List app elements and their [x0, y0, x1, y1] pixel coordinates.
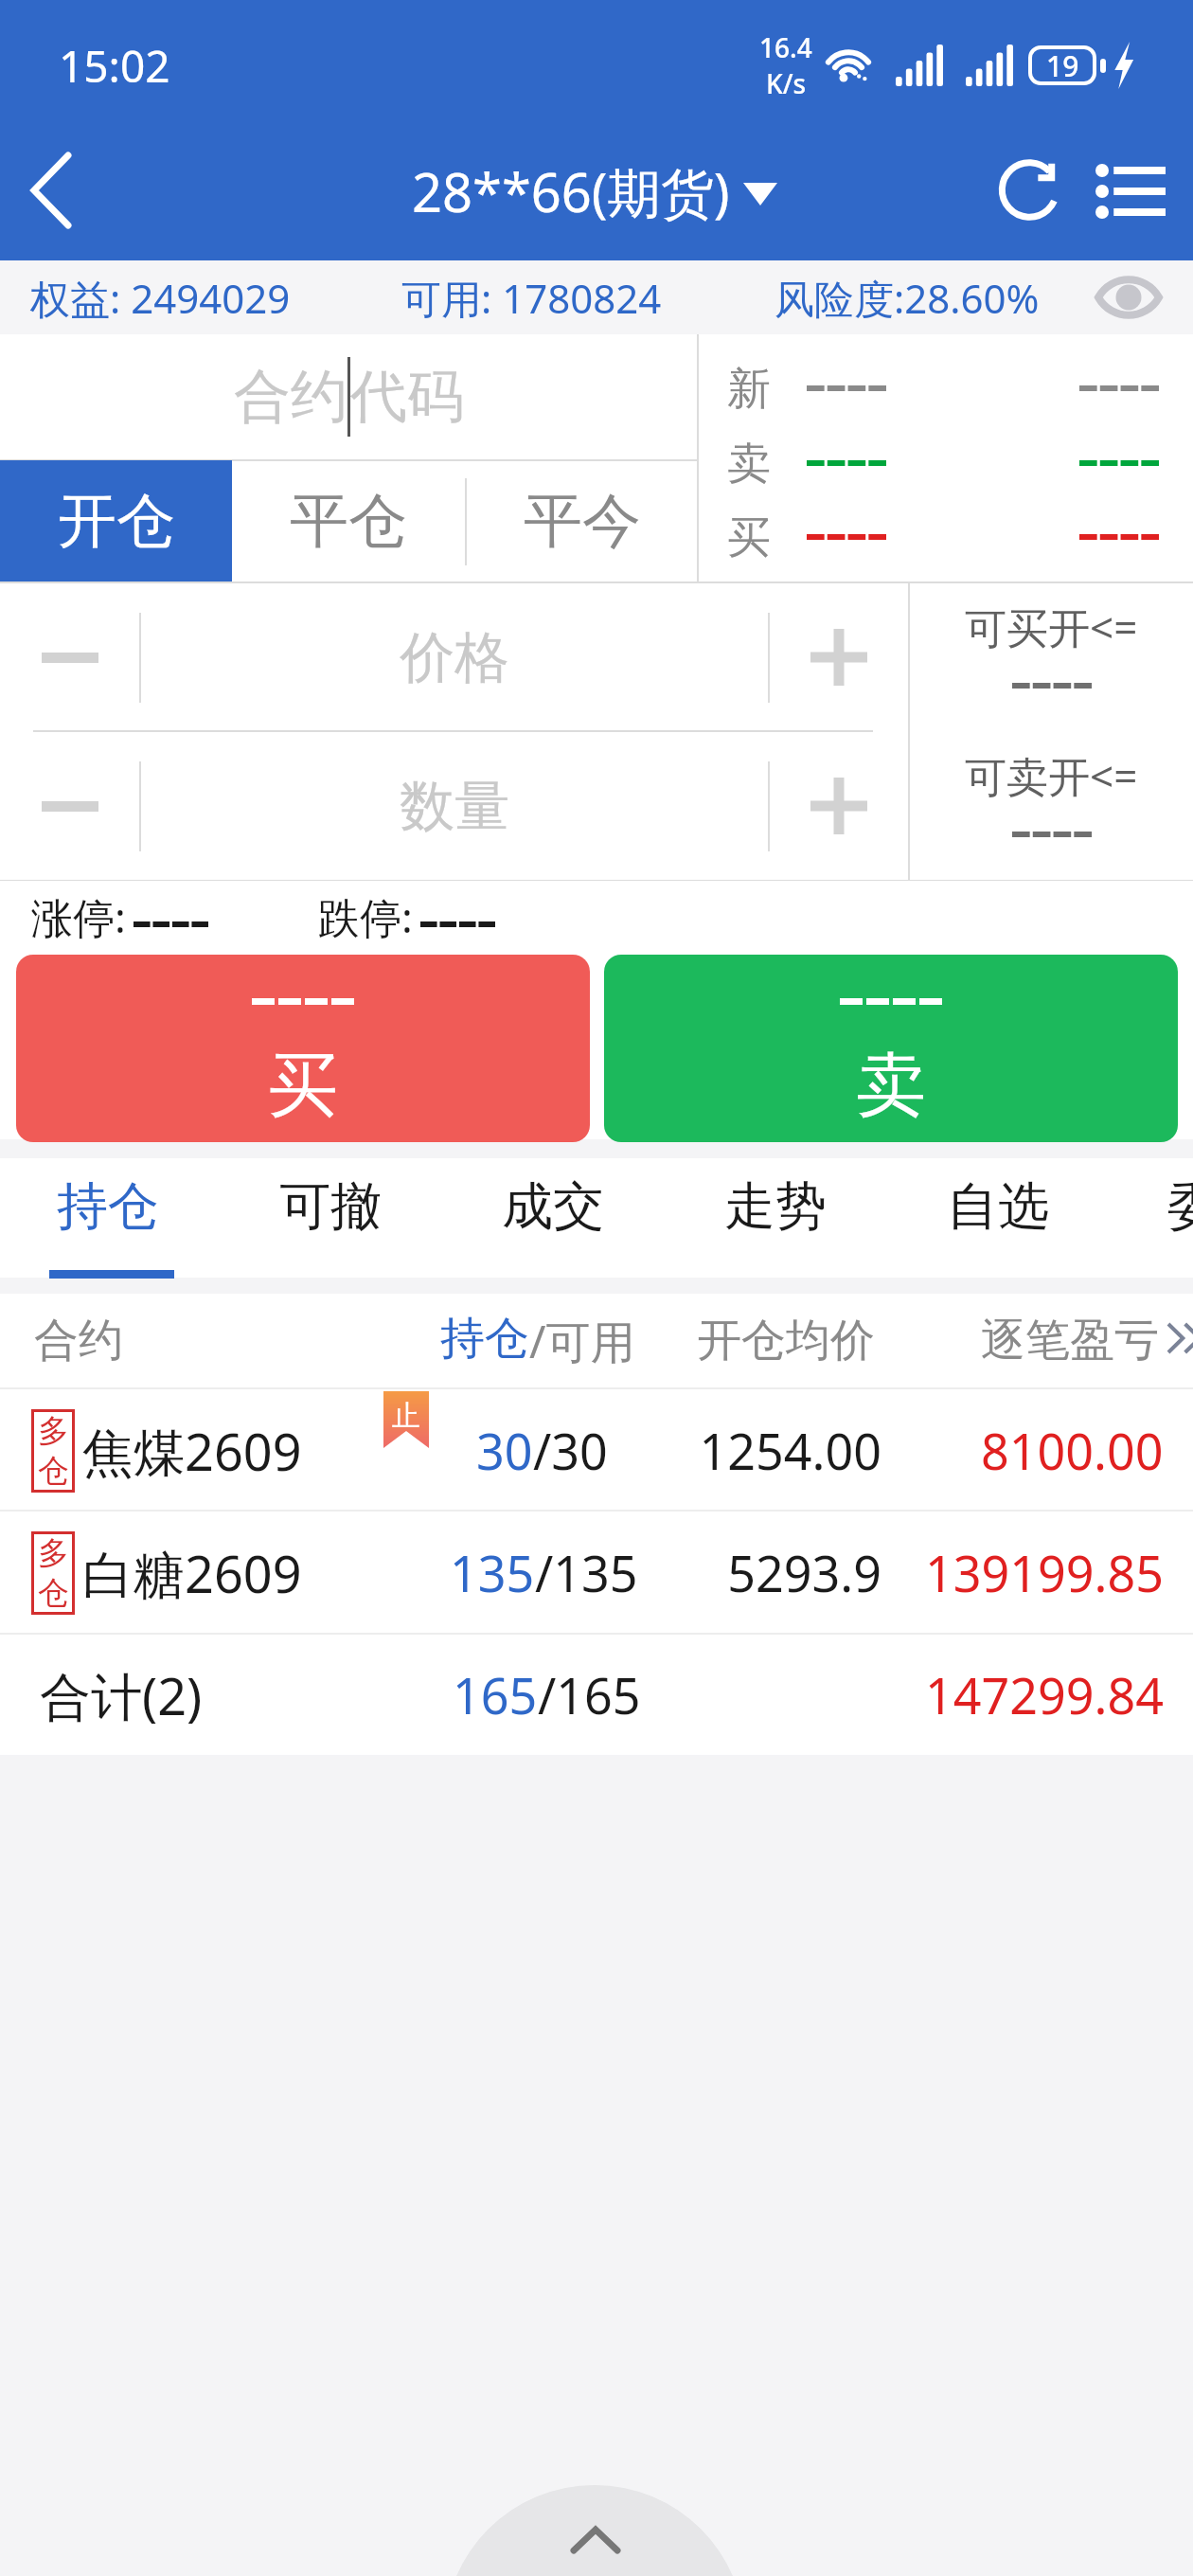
button[interactable]: 委	[1117, 1158, 1193, 1278]
button[interactable]: 数量	[141, 732, 768, 880]
staticText: 仓	[38, 1573, 69, 1613]
staticText: 逐笔盈亏	[981, 1313, 1159, 1368]
staticText: 147299.84	[925, 1661, 1164, 1728]
staticText: 代码	[350, 361, 464, 433]
staticText: 139199.85	[925, 1539, 1164, 1606]
staticText: /165	[538, 1661, 641, 1728]
staticText: /135	[535, 1539, 638, 1606]
staticText: 新	[727, 362, 771, 417]
button[interactable]: Refresh	[977, 123, 1087, 253]
button[interactable]: Decrease 价格	[0, 583, 140, 731]
staticText: 多	[38, 1533, 69, 1573]
button[interactable]: 可撤	[224, 1158, 436, 1278]
button[interactable]: 多	[0, 1389, 1193, 1512]
staticText: 卖	[856, 1042, 926, 1130]
button[interactable]: Back	[0, 131, 114, 260]
staticText: 委	[1167, 1174, 1193, 1239]
staticText: 买	[727, 510, 771, 565]
button[interactable]: 自选	[892, 1158, 1104, 1278]
staticText: 可撤	[279, 1174, 382, 1239]
button[interactable]: 卖	[604, 955, 1178, 1142]
staticText: 自选	[947, 1174, 1049, 1239]
button[interactable]: 成交	[447, 1158, 659, 1278]
button[interactable]: Toggle balance visibility	[1091, 260, 1166, 334]
staticText: 平今	[524, 484, 641, 558]
staticText: 持仓	[57, 1174, 159, 1239]
button[interactable]: Increase 数量	[770, 732, 908, 880]
staticText: 数量	[400, 772, 509, 841]
staticText: 成交	[502, 1174, 604, 1239]
staticText: 白糖2609	[82, 1538, 302, 1608]
button[interactable]: 平仓	[232, 460, 465, 581]
staticText: 持仓	[440, 1311, 529, 1367]
button[interactable]: 28**66(期货)	[412, 155, 777, 227]
staticText: 仓	[38, 1451, 69, 1491]
staticText: 8100.00	[981, 1417, 1164, 1484]
staticText: 可卖开<=	[965, 747, 1138, 804]
staticText: 涨停:	[31, 888, 126, 945]
staticText: 可买开<=	[965, 599, 1138, 655]
button[interactable]: 买	[16, 955, 590, 1142]
staticText: 19	[1046, 46, 1079, 85]
button[interactable]: 多	[0, 1512, 1193, 1634]
staticText: 平仓	[290, 484, 407, 558]
staticText: 卖	[727, 437, 771, 492]
staticText: 买	[268, 1042, 338, 1130]
staticText: 15:02	[59, 36, 170, 96]
staticText: 权益: 2494029	[30, 271, 291, 325]
staticText: 多	[38, 1411, 69, 1451]
staticText: 1254.00	[568, 1417, 881, 1484]
staticText: 合约	[234, 361, 347, 433]
staticText: 跌停:	[318, 888, 413, 945]
staticText: /30	[533, 1417, 608, 1484]
staticText: 合约	[34, 1313, 123, 1368]
button[interactable]: Expand keypad	[444, 2485, 745, 2576]
button[interactable]: Menu	[1076, 126, 1185, 256]
button[interactable]: 平今	[467, 460, 697, 581]
button[interactable]: 合约	[0, 334, 697, 459]
staticText: 28**66(期货)	[412, 155, 730, 227]
staticText: 30	[476, 1417, 533, 1484]
button[interactable]: 走势	[669, 1158, 881, 1278]
staticText: 合计(2)	[40, 1660, 203, 1730]
staticText: /可用	[529, 1311, 635, 1371]
staticText: 价格	[400, 623, 509, 692]
button[interactable]: 持仓	[2, 1158, 214, 1278]
staticText: 5293.9	[568, 1539, 881, 1606]
staticText: 开仓	[58, 484, 175, 558]
staticText: 可用: 1780824	[401, 271, 662, 325]
button[interactable]: 价格	[141, 583, 768, 731]
staticText: 135	[450, 1539, 535, 1606]
staticText: 走势	[724, 1174, 827, 1239]
button[interactable]: 开仓	[0, 460, 232, 581]
staticText: 风险度:28.60%	[775, 271, 1040, 325]
button[interactable]: 合计(2)	[0, 1635, 1193, 1755]
staticText: K/s	[766, 65, 807, 101]
staticText: 焦煤2609	[82, 1416, 302, 1486]
staticText: 止	[392, 1398, 420, 1434]
button[interactable]: Decrease 数量	[0, 732, 140, 880]
staticText: 16.4	[759, 29, 812, 65]
button[interactable]: Increase 价格	[770, 583, 908, 731]
staticText: 165	[453, 1661, 538, 1728]
staticText: 开仓均价	[697, 1313, 875, 1368]
